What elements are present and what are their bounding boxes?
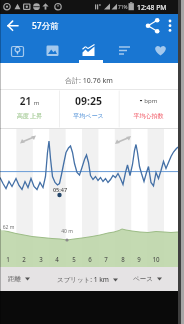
button[interactable]: 距離 [8, 267, 42, 291]
button[interactable] [0, 37, 35, 63]
staticText: 40 m [55, 228, 79, 235]
button[interactable] [35, 37, 70, 63]
staticText: 2 [16, 255, 32, 263]
staticText: 距離 [8, 275, 21, 283]
staticText: スプリット: 1 km [57, 275, 109, 284]
staticText: 7 [98, 255, 114, 263]
staticText: 5 [66, 255, 82, 263]
staticText: 09:25 [59, 94, 118, 108]
staticText: 3 [33, 255, 49, 263]
button[interactable]: ペース [133, 267, 171, 291]
button[interactable] [162, 14, 178, 38]
staticText: ペース [133, 275, 153, 283]
button[interactable] [142, 37, 178, 63]
staticText: 10 [148, 255, 164, 263]
staticText: 6 [82, 255, 98, 263]
button[interactable] [70, 37, 106, 63]
staticText: 合計: 10.76 km [0, 76, 178, 86]
staticText: 9 [131, 255, 147, 263]
staticText: 05:47 [47, 186, 73, 193]
button[interactable] [142, 14, 164, 38]
staticText: - bpm [119, 94, 178, 105]
staticText: 4 [49, 255, 65, 263]
button[interactable]: スプリット: 1 km [57, 267, 127, 291]
staticText: 21 m [0, 94, 59, 108]
staticText: 8 [115, 255, 131, 263]
staticText: 平均心拍数 [119, 112, 178, 120]
staticText: 71% [118, 4, 128, 11]
staticText: 1 [0, 255, 16, 263]
staticText: 平均ペース [59, 112, 118, 120]
staticText: 高度 上昇 [0, 112, 59, 120]
staticText: 62 m [1, 224, 16, 231]
button[interactable] [106, 37, 142, 63]
button[interactable] [0, 14, 28, 38]
staticText: 12:48 PM [137, 3, 167, 12]
staticText: 57分前 [32, 20, 59, 32]
